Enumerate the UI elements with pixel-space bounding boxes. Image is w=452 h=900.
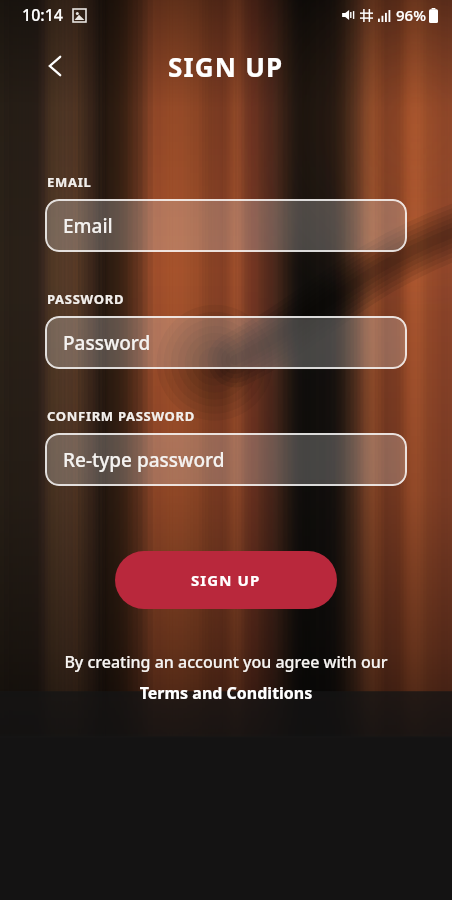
button[interactable]: Terms and Conditions: [24, 682, 428, 704]
button[interactable]: Back: [34, 45, 76, 87]
staticText: Email: [63, 213, 113, 239]
staticText: By creating an account you agree with ou…: [24, 651, 428, 673]
button[interactable]: Password: [45, 316, 407, 369]
staticText: PASSWORD: [47, 290, 125, 308]
staticText: 10:14: [22, 4, 63, 26]
staticText: 96%: [396, 5, 426, 25]
staticText: Password: [63, 330, 151, 356]
staticText: SIGN UP: [191, 570, 261, 590]
button[interactable]: Re-type password: [45, 433, 407, 486]
button[interactable]: SIGN UP: [115, 551, 337, 609]
staticText: Re-type password: [63, 447, 225, 473]
staticText: EMAIL: [47, 173, 92, 191]
button[interactable]: Email: [45, 199, 407, 252]
staticText: SIGN UP: [168, 49, 284, 84]
staticText: CONFIRM PASSWORD: [47, 407, 196, 425]
